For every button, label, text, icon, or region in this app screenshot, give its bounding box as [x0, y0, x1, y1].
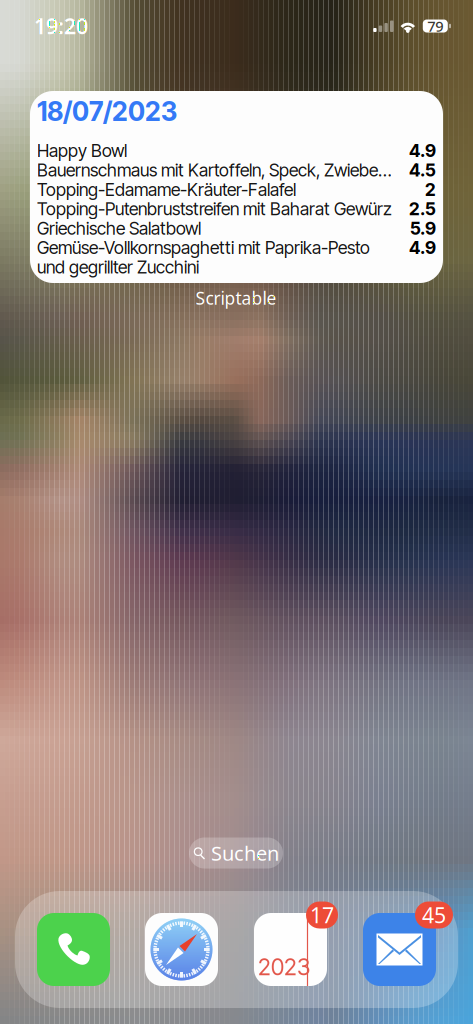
- staticText: und gegrillter Zucchini: [37, 256, 199, 278]
- button[interactable]: Safari: [145, 913, 218, 986]
- staticText: 18/07/2023: [37, 96, 177, 127]
- staticText: Suchen: [211, 840, 279, 866]
- staticText: 17: [310, 901, 334, 929]
- staticText: 2: [425, 179, 436, 200]
- staticText: Bauernschmaus mit Kartoffeln, Speck, Zwi…: [37, 159, 392, 181]
- staticText: Gemüse-Vollkornspaghetti mit Paprika-Pes…: [37, 237, 370, 258]
- staticText: 2.5: [409, 198, 436, 220]
- button[interactable]: Mail: [363, 913, 436, 986]
- staticText: Topping-Putenbruststreifen mit Baharat G…: [37, 198, 392, 220]
- staticText: 4.5: [409, 159, 436, 181]
- staticText: Griechische Salatbowl: [37, 218, 201, 239]
- staticText: 19:20: [34, 12, 88, 40]
- staticText: Topping-Edamame-Kräuter-Falafel: [37, 179, 296, 200]
- staticText: 4.9: [409, 237, 436, 258]
- staticText: 4.9: [409, 140, 436, 161]
- staticText: Scriptable: [195, 286, 276, 309]
- button[interactable]: Suchen: [189, 837, 283, 868]
- staticText: 45: [422, 901, 446, 929]
- staticText: Happy Bowl: [37, 140, 127, 161]
- staticText: 2023: [258, 953, 310, 981]
- button[interactable]: Phone: [37, 913, 110, 986]
- staticText: 79: [427, 16, 443, 36]
- staticText: 5.9: [410, 218, 436, 239]
- button[interactable]: Calendar: [254, 913, 327, 986]
